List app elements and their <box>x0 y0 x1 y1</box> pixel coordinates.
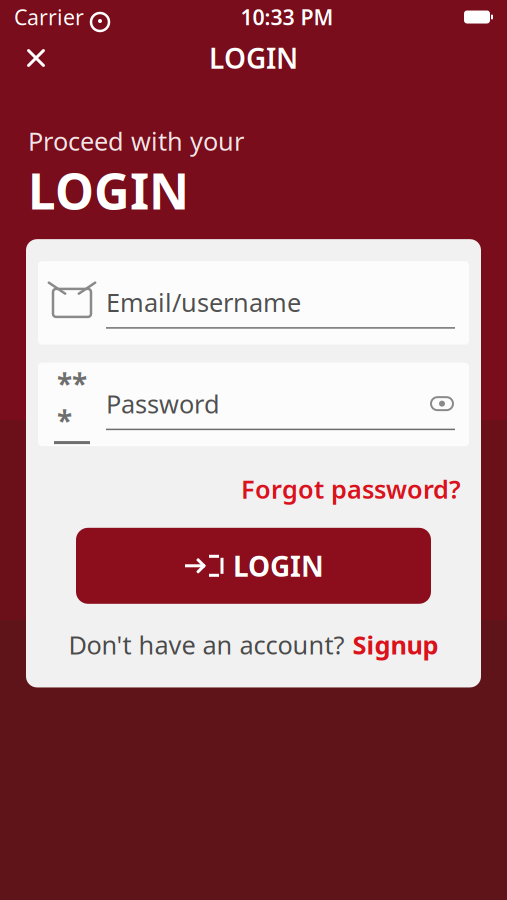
staticText: LOGIN <box>28 158 189 223</box>
button[interactable]: Don't have an account? <box>68 628 438 661</box>
staticText: LOGIN <box>233 547 324 584</box>
staticText: Email/username <box>106 285 301 319</box>
button[interactable]: Close <box>14 36 58 80</box>
button[interactable]: LOGIN <box>76 528 431 604</box>
staticText: 10:33 PM <box>240 3 333 31</box>
staticText: Carrier <box>14 3 84 31</box>
staticText: *** <box>57 365 87 439</box>
staticText: Password <box>106 387 220 420</box>
staticText: Forgot password? <box>241 472 461 506</box>
staticText: Signup <box>352 628 438 661</box>
staticText: LOGIN <box>209 39 298 77</box>
button[interactable]: Forgot password? <box>241 466 461 512</box>
staticText: Proceed with your <box>28 124 244 158</box>
staticText: Don't have an account? <box>68 628 344 661</box>
